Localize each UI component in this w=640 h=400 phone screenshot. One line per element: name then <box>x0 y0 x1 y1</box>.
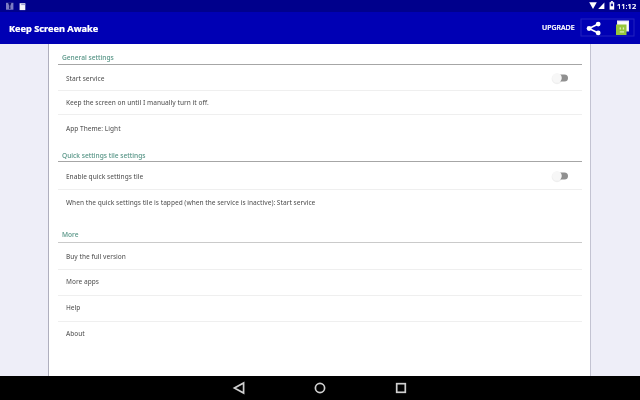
button[interactable]: Enable quick settings tile <box>49 165 590 187</box>
button[interactable]: When the quick settings tile is tapped (… <box>49 191 590 213</box>
staticText: App Theme: Light <box>66 124 590 133</box>
staticText: More apps <box>66 277 590 286</box>
button[interactable]: More apps <box>49 270 590 292</box>
staticText: General settings <box>62 53 114 62</box>
button[interactable]: UPGRADE <box>536 12 580 44</box>
staticText: Keep Screen Awake <box>9 22 99 35</box>
staticText: Enable quick settings tile <box>66 172 552 181</box>
button[interactable]: Share <box>581 12 606 44</box>
staticText: Start service <box>66 74 552 83</box>
button[interactable]: About <box>49 322 590 344</box>
staticText: Quick settings tile settings <box>62 151 146 160</box>
button[interactable]: Recent apps <box>381 376 421 400</box>
staticText: Buy the full version <box>66 252 590 261</box>
staticText: 11:12 <box>617 1 637 11</box>
button[interactable]: Back <box>219 376 259 400</box>
button[interactable]: Keep the screen on until I manually turn… <box>49 91 590 113</box>
button[interactable]: App Theme: Light <box>49 117 590 139</box>
staticText: Help <box>66 303 590 312</box>
button[interactable]: Home <box>300 376 340 400</box>
button[interactable]: Start service <box>49 67 590 89</box>
staticText: When the quick settings tile is tapped (… <box>66 198 590 207</box>
staticText: Keep the screen on until I manually turn… <box>66 98 590 107</box>
staticText: About <box>66 329 590 338</box>
button[interactable]: Open app info <box>610 12 636 44</box>
button[interactable]: Help <box>49 296 590 318</box>
button[interactable]: Buy the full version <box>49 245 590 267</box>
staticText: More <box>62 230 79 239</box>
staticText: UPGRADE <box>542 23 575 33</box>
